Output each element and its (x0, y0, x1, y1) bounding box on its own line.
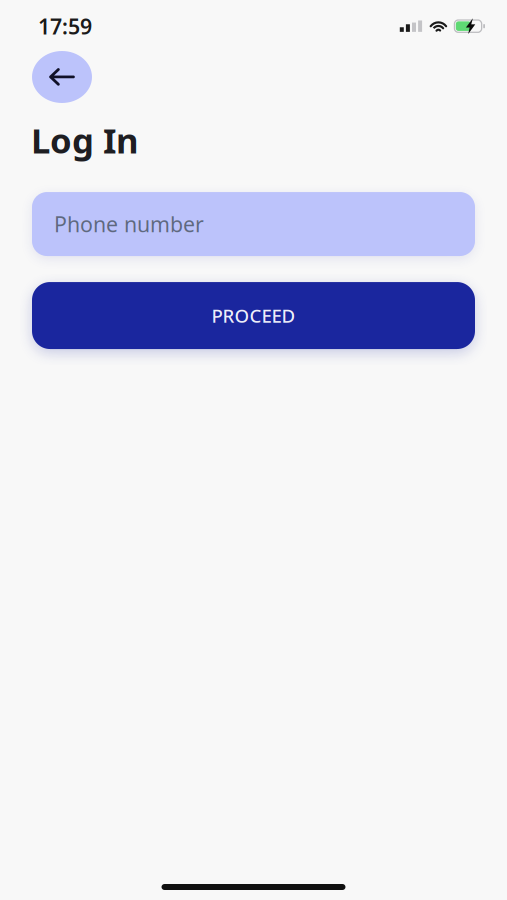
staticText: PROCEED (211, 303, 295, 328)
button[interactable]: PROCEED (0, 282, 507, 349)
button[interactable]: Phone number (0, 192, 507, 256)
button[interactable]: Back (32, 51, 92, 103)
staticText: Phone number (54, 210, 204, 238)
staticText: Log In (31, 117, 139, 163)
staticText: 17:59 (38, 12, 92, 40)
